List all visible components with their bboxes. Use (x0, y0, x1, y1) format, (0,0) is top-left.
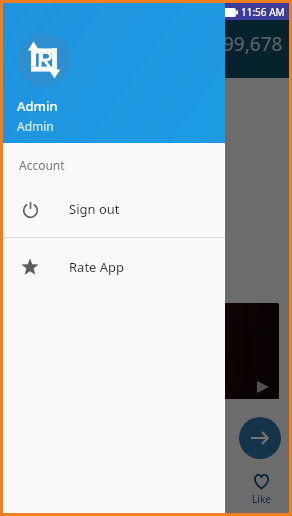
button[interactable]: Next (239, 417, 281, 459)
staticText: Sign out (69, 200, 120, 218)
button[interactable]: Admin (3, 3, 225, 143)
staticText: Like (252, 492, 271, 506)
staticText: Admin (17, 97, 58, 115)
button[interactable]: Rate App (3, 247, 225, 287)
staticText: Rate App (69, 258, 125, 276)
button[interactable]: Sign out (3, 189, 225, 229)
button[interactable] (27, 303, 279, 399)
staticText: Admin (17, 118, 54, 134)
button[interactable]: Like (235, 473, 287, 506)
staticText: 11:56 AM (241, 5, 285, 19)
staticText: 99,678 (223, 31, 283, 57)
staticText: Account (19, 157, 65, 173)
